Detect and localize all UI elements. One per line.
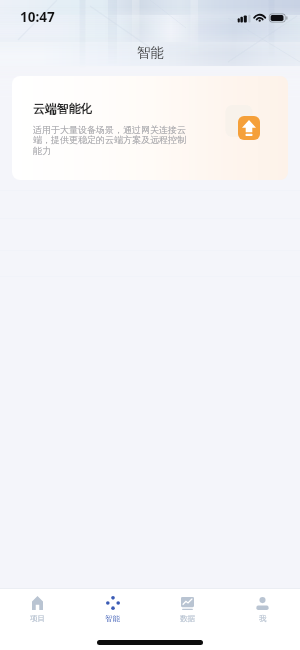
staticText: 项目: [30, 614, 45, 623]
staticText: 云端智能化: [33, 102, 92, 117]
button[interactable]: 数据: [150, 589, 225, 630]
staticText: 适用于大量设备场景，通过网关连接云端，提供更稳定的云端方案及远程控制能力: [33, 124, 186, 157]
button[interactable]: 我: [225, 589, 300, 630]
button[interactable]: 智能: [75, 589, 150, 630]
staticText: 我: [259, 614, 267, 623]
staticText: 数据: [180, 614, 195, 623]
staticText: 智能: [137, 44, 164, 61]
other: Upload to cloud: [238, 116, 260, 140]
staticText: 10:47: [20, 8, 55, 26]
staticText: 智能: [105, 614, 120, 623]
button[interactable]: 云端智能化: [12, 76, 288, 180]
button[interactable]: 项目: [0, 589, 75, 630]
